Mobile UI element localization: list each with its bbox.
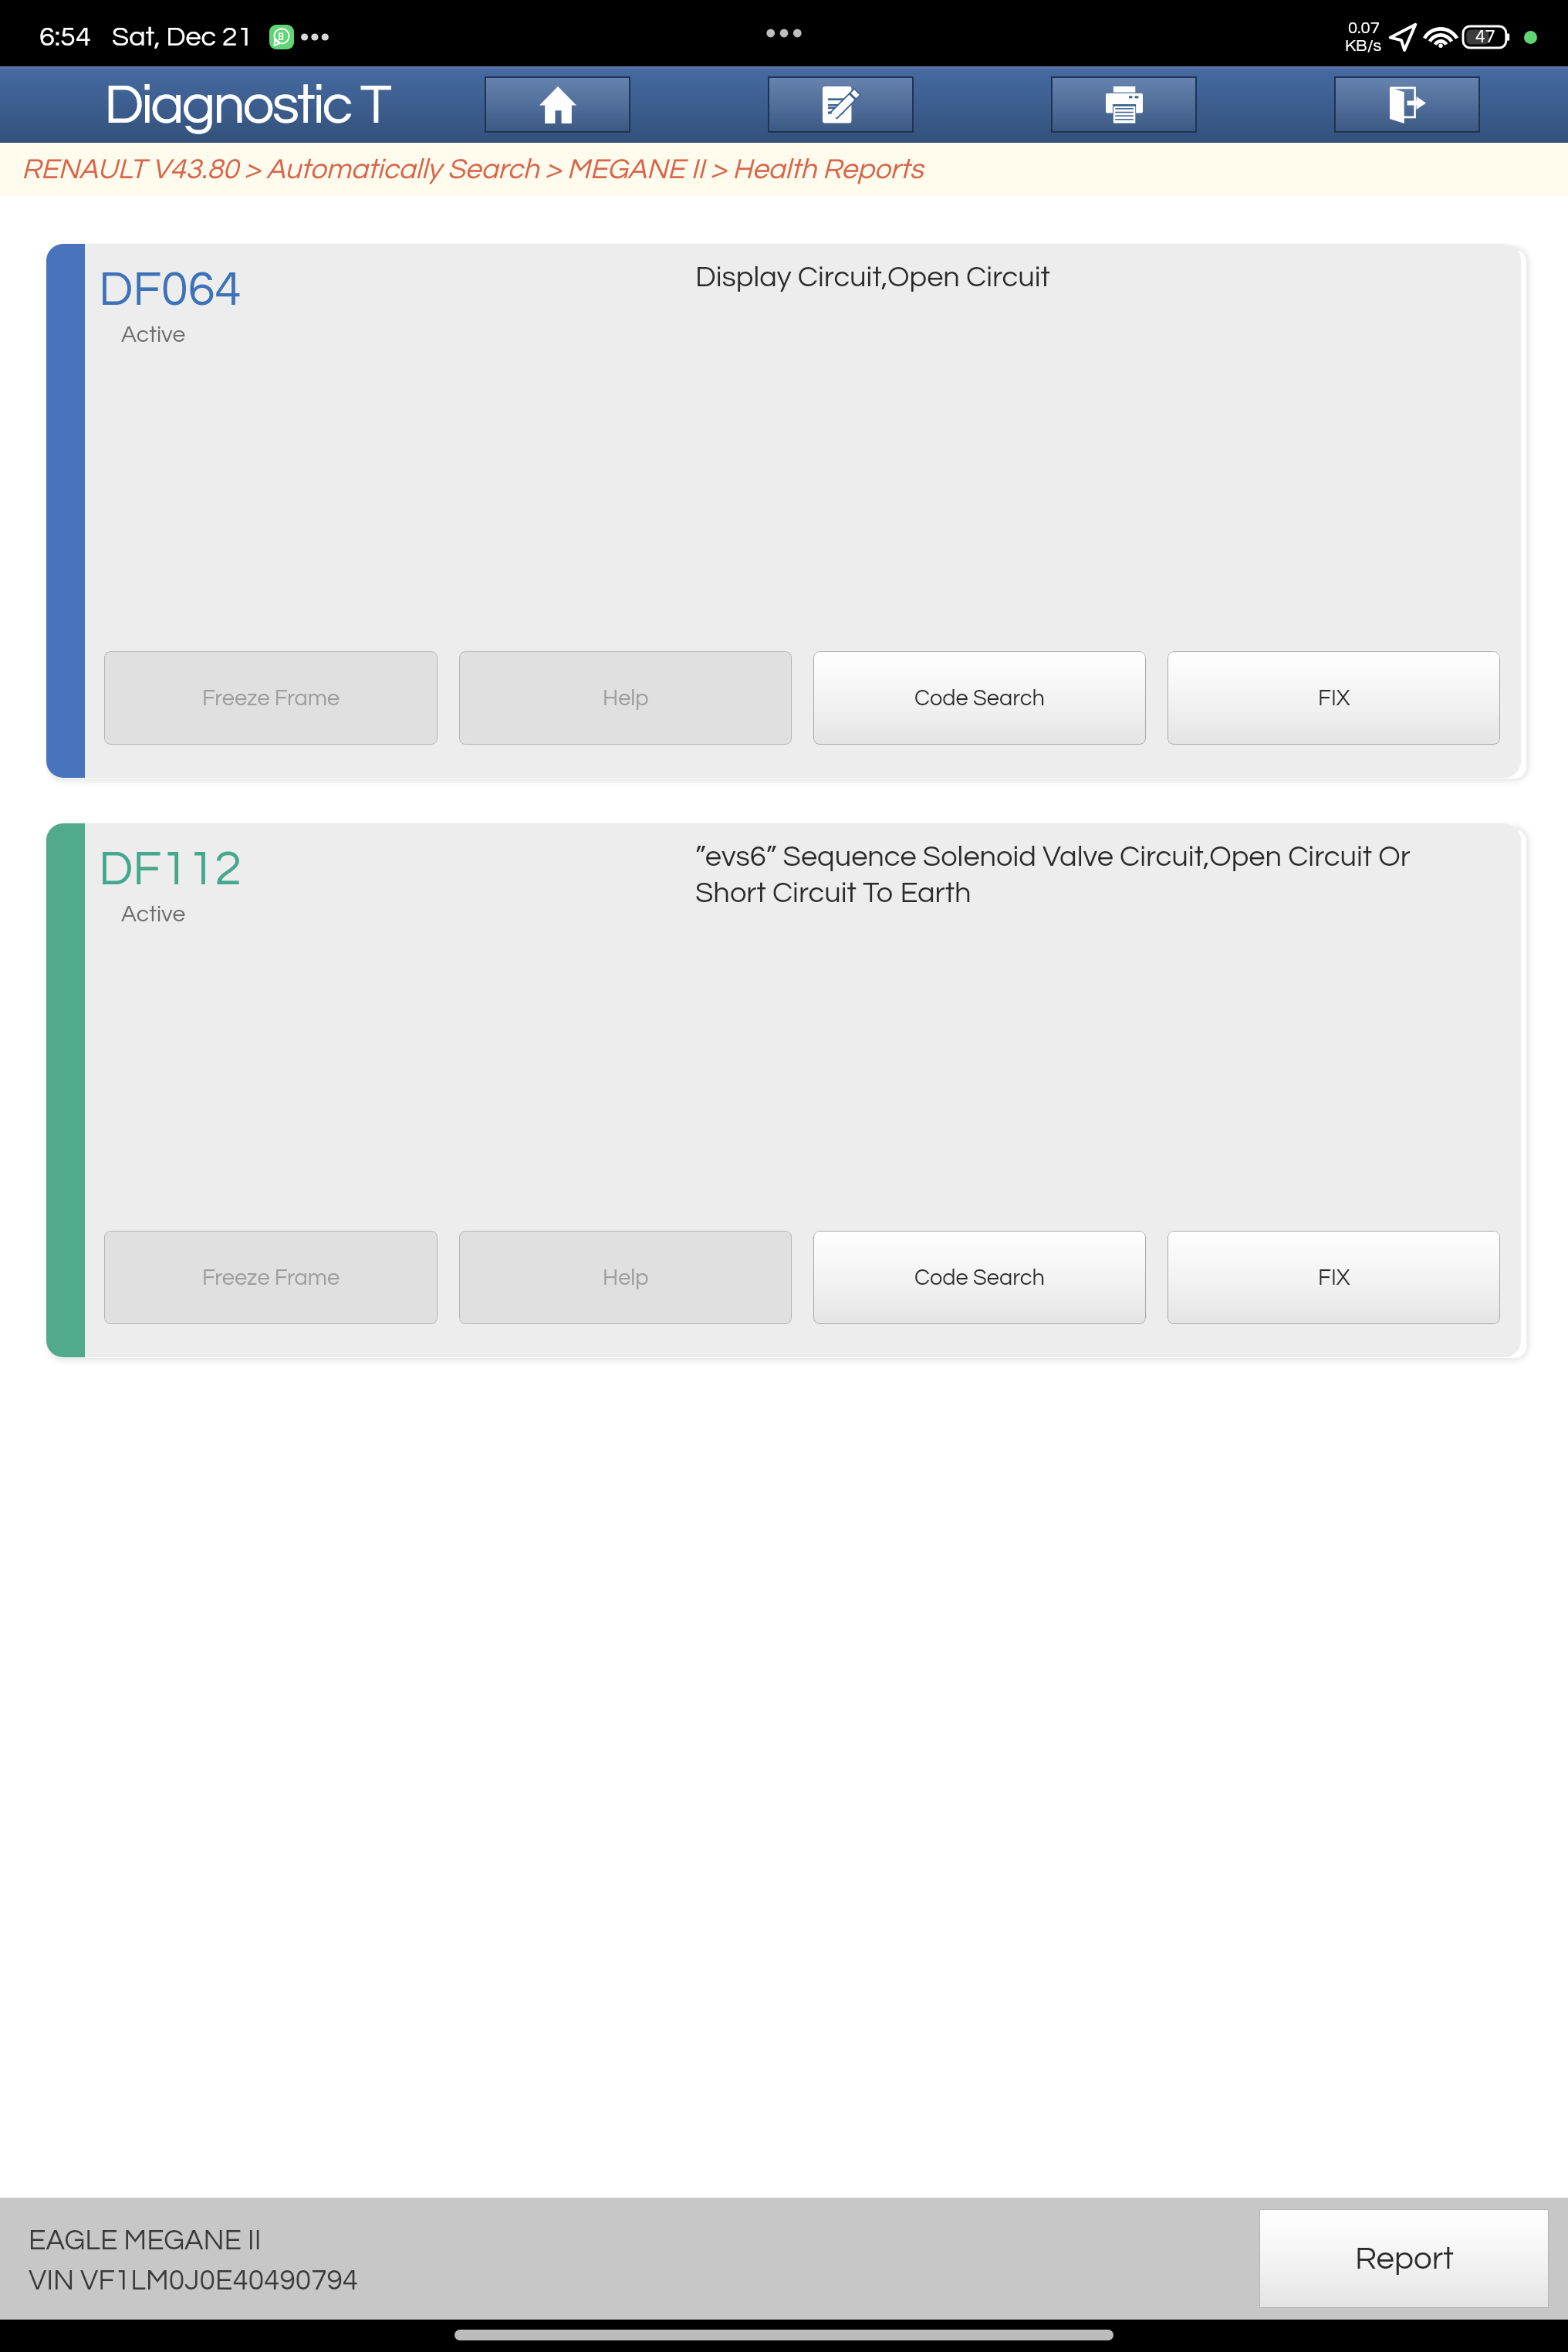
button[interactable]: Home — [485, 76, 630, 133]
button[interactable]: Freeze Frame — [104, 1231, 438, 1324]
staticText: 0.07 — [1348, 19, 1380, 37]
staticText: EAGLE MEGANE II — [29, 2226, 262, 2256]
staticText: Freeze Frame — [202, 687, 340, 710]
button[interactable]: FIX — [1168, 1231, 1500, 1324]
staticText: RENAULT V43.80 > Automatically Search > … — [22, 155, 924, 184]
staticText: DF064 — [99, 265, 242, 315]
staticText: 47 — [1475, 28, 1495, 46]
staticText: DF112 — [99, 844, 242, 894]
button[interactable]: Print — [1051, 76, 1197, 133]
staticText: Diagnostic T — [104, 76, 390, 134]
button[interactable]: Help — [459, 651, 792, 745]
button[interactable]: DF064 — [46, 244, 1521, 778]
staticText: 6:54 — [39, 22, 91, 51]
button[interactable]: Help — [459, 1231, 792, 1324]
staticText: KB/s — [1345, 37, 1382, 55]
staticText: Freeze Frame — [202, 1266, 340, 1289]
staticText: ”evs6” Sequence Solenoid Valve Circuit,O… — [695, 842, 1411, 908]
staticText: Active — [121, 323, 186, 346]
staticText: Code Search — [914, 687, 1046, 710]
button[interactable]: Edit report — [768, 76, 914, 133]
button[interactable]: Exit — [1334, 76, 1480, 133]
staticText: Code Search — [914, 1266, 1046, 1289]
button[interactable]: DF112 — [46, 823, 1521, 1357]
staticText: VIN VF1LM0J0E40490794 — [29, 2266, 359, 2296]
staticText: Report — [1355, 2242, 1454, 2276]
button[interactable]: Freeze Frame — [104, 651, 438, 745]
staticText: Help — [603, 687, 649, 710]
button[interactable]: Report — [1259, 2209, 1549, 2308]
staticText: Display Circuit,Open Circuit — [695, 262, 1050, 292]
staticText: Active — [121, 902, 186, 926]
staticText: FIX — [1318, 1266, 1350, 1289]
staticText: FIX — [1318, 687, 1350, 710]
button[interactable]: Code Search — [813, 1231, 1146, 1324]
staticText: Help — [603, 1266, 649, 1289]
button[interactable]: FIX — [1168, 651, 1500, 745]
button[interactable]: Code Search — [813, 651, 1146, 745]
staticText: Sat, Dec 21 — [112, 22, 253, 51]
